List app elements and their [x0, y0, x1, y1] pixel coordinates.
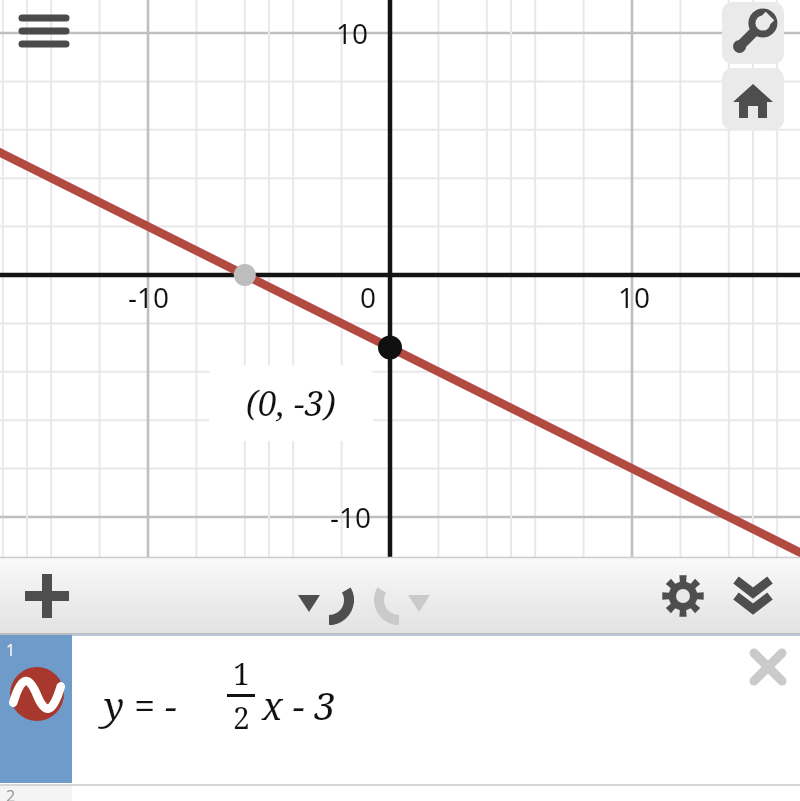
staticText: 2	[6, 785, 16, 801]
staticText: 10	[618, 278, 651, 316]
staticText: 10	[336, 14, 369, 52]
button[interactable]: Undo	[298, 565, 360, 627]
button[interactable]: Home	[722, 68, 784, 130]
staticText: 0	[360, 278, 377, 316]
staticText: 1	[233, 653, 250, 694]
button[interactable]: Delete row	[744, 643, 792, 691]
button[interactable]: 1	[0, 635, 800, 783]
button[interactable]: Settings	[652, 565, 714, 627]
staticText: y = −	[104, 679, 177, 731]
staticText: -10	[330, 498, 372, 536]
staticText: x − 3	[262, 679, 336, 731]
button[interactable]: Add	[16, 565, 78, 627]
button[interactable]: Tools	[722, 2, 784, 64]
staticText: 1	[6, 639, 16, 661]
staticText: 2	[233, 697, 250, 738]
button[interactable]: 2	[0, 785, 800, 801]
button[interactable]: Collapse	[722, 565, 784, 627]
button[interactable]: Menu	[18, 4, 70, 56]
staticText: -10	[128, 278, 170, 316]
button[interactable]: (0, −3)	[209, 365, 373, 441]
staticText: (0, −3)	[246, 380, 336, 426]
button[interactable]: Redo	[368, 565, 430, 627]
